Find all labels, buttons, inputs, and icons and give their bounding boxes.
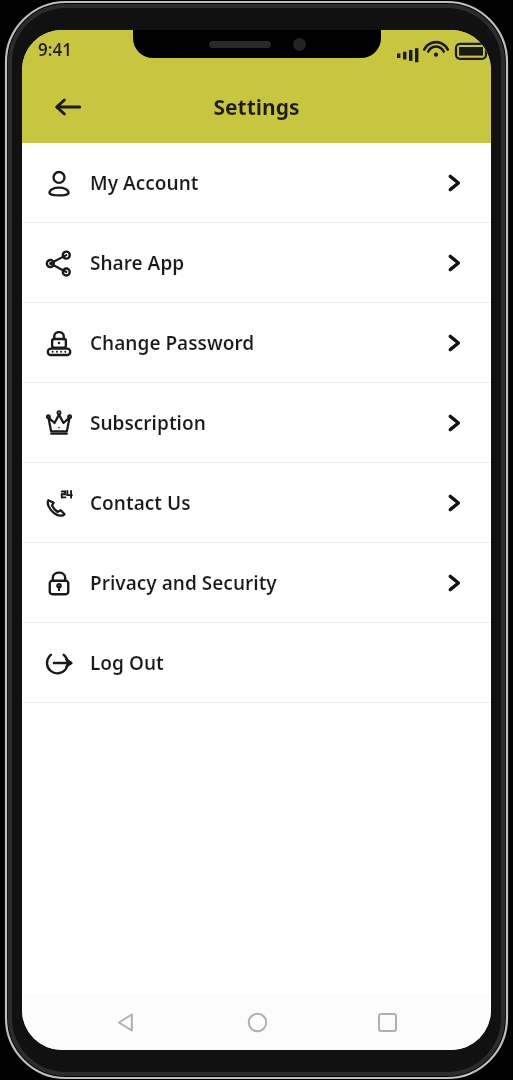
button[interactable]: Change Password bbox=[22, 303, 491, 382]
button[interactable]: Home bbox=[230, 995, 284, 1049]
button[interactable]: Share App bbox=[22, 223, 491, 302]
staticText: Contact Us bbox=[90, 490, 191, 516]
button[interactable]: Recent apps bbox=[360, 995, 414, 1049]
staticText: My Account bbox=[90, 170, 199, 196]
button[interactable]: Log Out bbox=[22, 623, 491, 702]
button[interactable]: Contact Us bbox=[22, 463, 491, 542]
staticText: Share App bbox=[90, 250, 185, 276]
button[interactable]: My Account bbox=[22, 143, 491, 222]
button[interactable]: Back bbox=[46, 85, 90, 129]
button[interactable]: Subscription bbox=[22, 383, 491, 462]
staticText: Log Out bbox=[90, 650, 164, 676]
button[interactable]: Privacy and Security bbox=[22, 543, 491, 622]
staticText: Privacy and Security bbox=[90, 570, 277, 596]
staticText: Change Password bbox=[90, 330, 255, 356]
button[interactable]: Back bbox=[99, 995, 153, 1049]
staticText: Subscription bbox=[90, 410, 206, 436]
staticText: 9:41 bbox=[38, 38, 72, 61]
staticText: Settings bbox=[213, 93, 300, 122]
